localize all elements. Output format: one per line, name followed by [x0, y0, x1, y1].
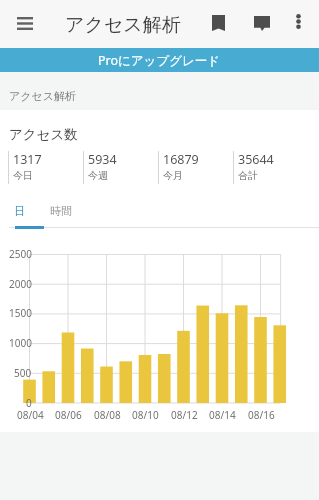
- staticText: 時間: [50, 204, 72, 218]
- staticText: 08/14: [209, 408, 236, 422]
- staticText: 08/08: [94, 408, 121, 422]
- button[interactable]: Bookmark: [201, 6, 235, 40]
- staticText: Proにアップグレード: [98, 52, 221, 69]
- staticText: 08/04: [17, 408, 44, 422]
- staticText: 日: [14, 204, 25, 218]
- button[interactable]: More options: [283, 6, 314, 37]
- staticText: 2000: [9, 277, 32, 291]
- button[interactable]: 35644: [233, 151, 308, 184]
- staticText: 0: [26, 396, 32, 410]
- staticText: アクセス解析: [9, 89, 77, 103]
- staticText: 今週: [88, 169, 108, 182]
- button[interactable]: 日: [14, 204, 25, 226]
- staticText: アクセス解析: [65, 13, 181, 37]
- staticText: 1000: [9, 336, 32, 350]
- staticText: 08/16: [248, 408, 275, 422]
- button[interactable]: Menu: [8, 7, 41, 40]
- button[interactable]: 1317: [8, 151, 83, 184]
- button[interactable]: 5934: [83, 151, 158, 184]
- button[interactable]: Comments: [245, 6, 279, 40]
- staticText: 1500: [9, 306, 32, 320]
- staticText: 08/10: [132, 408, 159, 422]
- staticText: 500: [14, 366, 32, 380]
- staticText: 08/12: [171, 408, 198, 422]
- staticText: 5934: [88, 151, 117, 168]
- staticText: 2500: [9, 247, 32, 261]
- staticText: 合計: [238, 169, 258, 182]
- staticText: 16879: [163, 151, 199, 168]
- staticText: 35644: [238, 151, 274, 168]
- button[interactable]: 16879: [158, 151, 233, 184]
- button[interactable]: 時間: [50, 204, 72, 226]
- staticText: 今月: [163, 169, 183, 182]
- staticText: 08/06: [55, 408, 82, 422]
- staticText: 1317: [13, 151, 42, 168]
- button[interactable]: Proにアップグレード: [0, 48, 319, 72]
- staticText: 今日: [13, 169, 33, 182]
- staticText: アクセス数: [9, 126, 78, 143]
